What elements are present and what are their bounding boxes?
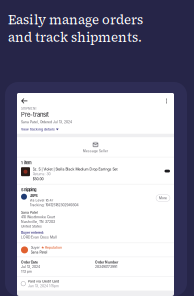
staticText: Buyer	[30, 246, 39, 250]
staticText: Sana Patel	[21, 210, 38, 214]
staticText: LORD Evan Cross Mall	[21, 235, 57, 239]
staticText: Sana Patel	[30, 250, 47, 254]
button[interactable]: Back	[21, 97, 32, 104]
staticText: USPS	[29, 194, 37, 198]
staticText: Message Seller	[83, 149, 108, 153]
staticText: Order Date	[21, 260, 38, 264]
staticText: More	[159, 196, 167, 200]
staticText: 1:13 pm	[21, 269, 32, 273]
button[interactable]: Message Seller	[17, 137, 174, 157]
staticText: and track shipments.	[8, 28, 142, 46]
staticText: Buyer entered:	[21, 230, 44, 234]
staticText: Sz. S | Violet | Stella Black Medium Dro…	[32, 167, 117, 171]
button[interactable]: More options	[163, 97, 170, 104]
staticText: ★ Reputation	[41, 246, 62, 250]
button[interactable]: View tracking details	[21, 124, 59, 134]
staticText: Nashville, TN 37203	[21, 220, 55, 224]
staticText: 1 item	[21, 160, 32, 165]
staticText: $50.00	[32, 177, 43, 181]
staticText: Returns: 30	[32, 172, 50, 176]
staticText: View tracking details	[21, 127, 55, 131]
staticText: 283490173991	[95, 265, 117, 269]
staticText: Jul 13, 2024	[21, 265, 40, 269]
staticText: Jan 13, 2024 1:15pm	[28, 284, 59, 288]
staticText: Pre-transit	[21, 111, 49, 118]
staticText: Shipping	[21, 187, 37, 192]
button[interactable]: More	[156, 195, 170, 201]
staticText: 410 Westbrooke Court	[21, 215, 55, 219]
staticText: Easily manage orders	[8, 11, 143, 28]
staticText: United States	[21, 224, 42, 228]
staticText: Paid via Credit Card	[28, 279, 59, 283]
staticText: Sana Patel, Ordered Jul 13, 2024	[21, 120, 72, 124]
staticText: SHIPMENT	[21, 107, 37, 110]
staticText: Tracking: 194125182302949304	[29, 203, 78, 207]
staticText: Via Level 18.47	[29, 198, 53, 202]
staticText: Order Number	[95, 260, 118, 264]
